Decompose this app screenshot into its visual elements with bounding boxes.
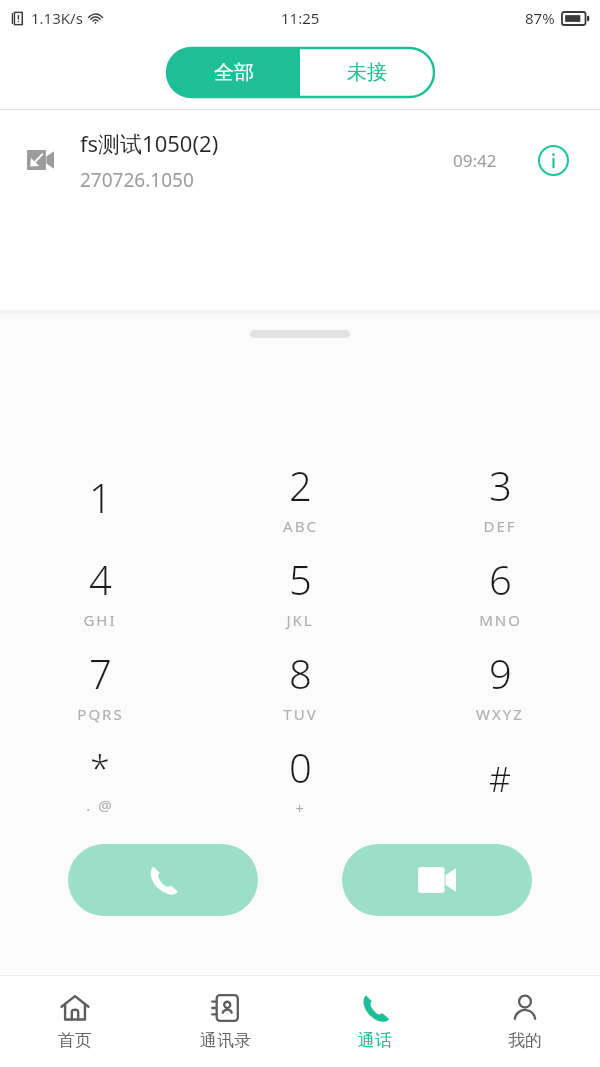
button[interactable]: Video call (342, 844, 532, 916)
staticText: 270726.1050 (80, 167, 194, 193)
staticText: 4 (89, 552, 112, 606)
staticText: 首页 (58, 1030, 92, 1051)
button[interactable]: # (400, 732, 600, 826)
staticText: 6 (489, 552, 512, 606)
button[interactable]: 6 (400, 544, 600, 638)
staticText: WXYZ (476, 704, 524, 724)
staticText: MNO (479, 610, 522, 630)
button[interactable]: Call details (529, 136, 577, 184)
button[interactable]: 8 (200, 638, 400, 732)
staticText: 0 (289, 740, 312, 794)
button[interactable]: 2 (200, 450, 400, 544)
staticText: 3 (489, 458, 512, 512)
button[interactable]: 5 (200, 544, 400, 638)
staticText: 5 (289, 552, 312, 606)
staticText: DEF (483, 516, 517, 536)
staticText: ABC (283, 516, 318, 536)
button[interactable]: 我的 (450, 975, 600, 1067)
button[interactable]: 全部 (167, 48, 300, 97)
staticText: GHI (83, 610, 117, 630)
button[interactable]: 0 (200, 732, 400, 826)
button[interactable]: 1 (0, 450, 200, 544)
staticText: + (295, 798, 306, 818)
staticText: * (90, 744, 110, 793)
button[interactable]: 4 (0, 544, 200, 638)
staticText: 11:25 (281, 8, 320, 28)
staticText: 87% (525, 8, 555, 28)
button[interactable]: 未接 (300, 48, 434, 97)
staticText: 通话 (358, 1030, 392, 1051)
button[interactable]: 首页 (0, 975, 150, 1067)
staticText: 9 (489, 646, 512, 700)
button[interactable]: Voice call (68, 844, 258, 916)
staticText: 我的 (508, 1030, 542, 1051)
staticText: 1 (89, 470, 112, 524)
staticText: TUV (283, 704, 318, 724)
button[interactable]: fs测试1050(2) (0, 110, 600, 210)
staticText: . @ (86, 795, 114, 815)
staticText: 全部 (214, 60, 254, 85)
staticText: 2 (289, 458, 312, 512)
button[interactable]: * (0, 732, 200, 826)
button[interactable]: 7 (0, 638, 200, 732)
staticText: 09:42 (453, 149, 497, 172)
staticText: JKL (286, 610, 314, 630)
button[interactable]: 9 (400, 638, 600, 732)
staticText: 7 (89, 646, 112, 700)
staticText: fs测试1050(2) (80, 128, 219, 158)
staticText: 未接 (347, 60, 387, 85)
staticText: PQRS (77, 704, 124, 724)
button[interactable]: 通话 (300, 975, 450, 1067)
staticText: 1.13K/s (31, 8, 83, 28)
staticText: 8 (289, 646, 312, 700)
button[interactable]: 3 (400, 450, 600, 544)
staticText: # (489, 756, 511, 802)
staticText: 通讯录 (200, 1030, 251, 1051)
button[interactable]: 通讯录 (150, 975, 300, 1067)
